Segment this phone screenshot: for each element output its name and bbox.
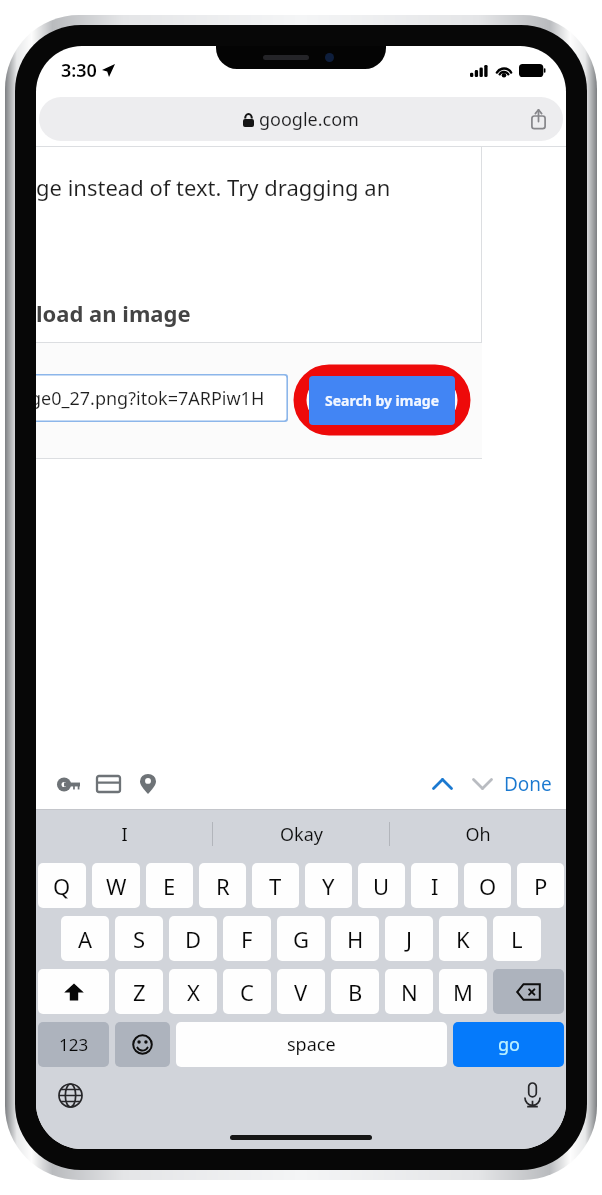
staticText: F bbox=[241, 924, 253, 954]
staticText: ge0_27.png?itok=7ARPiw1H bbox=[36, 386, 265, 411]
button[interactable]: go bbox=[453, 1022, 564, 1067]
staticText: N bbox=[401, 977, 418, 1007]
button[interactable]: Dictation bbox=[510, 1073, 554, 1117]
button[interactable]: Backspace bbox=[493, 969, 564, 1014]
button[interactable]: S bbox=[115, 916, 163, 961]
staticText: R bbox=[216, 871, 230, 901]
staticText: X bbox=[187, 977, 200, 1007]
button[interactable]: G bbox=[277, 916, 325, 961]
staticText: B bbox=[348, 977, 363, 1007]
button[interactable]: Previous field bbox=[422, 764, 462, 804]
staticText: J bbox=[406, 924, 413, 954]
button[interactable]: space bbox=[176, 1022, 447, 1067]
button[interactable]: N bbox=[385, 969, 433, 1014]
staticText: K bbox=[456, 924, 470, 954]
button[interactable]: V bbox=[277, 969, 325, 1014]
staticText: L bbox=[511, 924, 523, 954]
staticText: Z bbox=[133, 977, 146, 1007]
button[interactable]: U bbox=[358, 863, 405, 908]
staticText: W bbox=[106, 871, 127, 901]
staticText: E bbox=[163, 871, 176, 901]
staticText: Okay bbox=[280, 822, 323, 847]
button[interactable]: Oh bbox=[390, 810, 566, 858]
button[interactable]: Okay bbox=[213, 810, 389, 858]
button[interactable]: R bbox=[199, 863, 246, 908]
button[interactable]: Next keyboard bbox=[48, 1073, 92, 1117]
staticText: U bbox=[373, 871, 390, 901]
staticText: google.com bbox=[259, 107, 359, 132]
staticText: 123 bbox=[59, 1033, 89, 1056]
button[interactable]: Emoji bbox=[115, 1022, 170, 1067]
button[interactable]: Next field bbox=[462, 764, 502, 804]
staticText: M bbox=[453, 977, 473, 1007]
staticText: S bbox=[133, 924, 146, 954]
button[interactable]: P bbox=[517, 863, 564, 908]
button[interactable]: K bbox=[439, 916, 487, 961]
staticText: Oh bbox=[465, 822, 491, 847]
staticText: I bbox=[431, 871, 439, 901]
button[interactable]: 123 bbox=[38, 1022, 109, 1067]
staticText: I bbox=[121, 822, 128, 847]
button[interactable]: Saved passwords bbox=[48, 764, 88, 804]
button[interactable]: E bbox=[146, 863, 193, 908]
staticText: G bbox=[293, 924, 310, 954]
button[interactable]: W bbox=[92, 863, 140, 908]
staticText: load an image bbox=[36, 298, 191, 328]
button[interactable]: X bbox=[169, 969, 217, 1014]
staticText: ge instead of text. Try dragging an bbox=[36, 172, 391, 202]
button[interactable]: H bbox=[331, 916, 379, 961]
button[interactable]: I bbox=[411, 863, 458, 908]
staticText: 3:30 bbox=[61, 58, 97, 83]
button[interactable]: C bbox=[223, 969, 271, 1014]
staticText: O bbox=[479, 871, 497, 901]
staticText: D bbox=[185, 924, 202, 954]
button[interactable]: J bbox=[385, 916, 433, 961]
button[interactable]: F bbox=[223, 916, 271, 961]
button[interactable]: B bbox=[331, 969, 379, 1014]
button[interactable]: Q bbox=[38, 863, 86, 908]
staticText: C bbox=[240, 977, 254, 1007]
button[interactable]: Share bbox=[522, 103, 554, 135]
button[interactable]: Y bbox=[305, 863, 352, 908]
button[interactable]: L bbox=[493, 916, 541, 961]
staticText: A bbox=[78, 924, 93, 954]
button[interactable]: A bbox=[61, 916, 109, 961]
staticText: Done bbox=[504, 771, 552, 797]
staticText: Q bbox=[53, 871, 71, 901]
button[interactable]: I bbox=[36, 810, 212, 858]
staticText: H bbox=[347, 924, 364, 954]
staticText: go bbox=[498, 1032, 520, 1057]
button[interactable]: Z bbox=[115, 969, 163, 1014]
button[interactable]: Search by image bbox=[309, 376, 455, 425]
button[interactable]: google.com bbox=[39, 97, 563, 141]
button[interactable]: D bbox=[169, 916, 217, 961]
button[interactable]: Done bbox=[504, 763, 552, 805]
staticText: Y bbox=[322, 871, 335, 901]
staticText: P bbox=[534, 871, 548, 901]
button[interactable]: M bbox=[439, 969, 487, 1014]
staticText: Search by image bbox=[325, 391, 440, 410]
staticText: space bbox=[287, 1032, 336, 1057]
button[interactable]: Addresses bbox=[128, 764, 168, 804]
staticText: V bbox=[294, 977, 308, 1007]
button[interactable]: Shift bbox=[38, 969, 109, 1014]
button[interactable]: T bbox=[252, 863, 299, 908]
button[interactable]: ge0_27.png?itok=7ARPiw1H bbox=[36, 374, 288, 422]
button[interactable]: Credit cards bbox=[88, 764, 128, 804]
staticText: T bbox=[269, 871, 282, 901]
button[interactable]: O bbox=[464, 863, 511, 908]
